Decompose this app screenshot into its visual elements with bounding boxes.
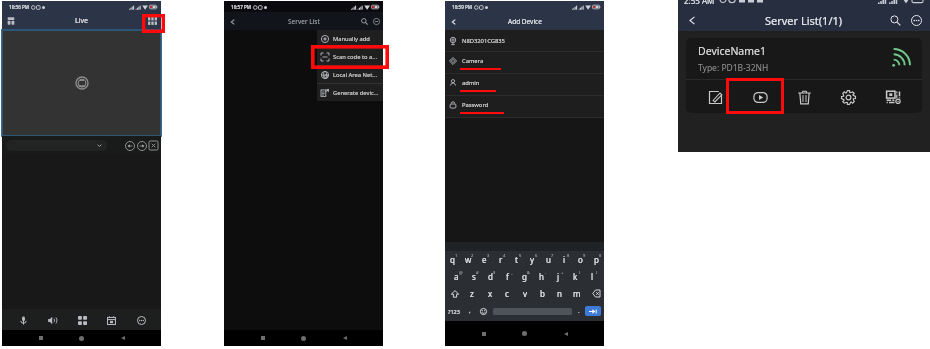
button[interactable]: Back: [226, 15, 239, 28]
staticText: j: [557, 271, 560, 282]
staticText: i: [563, 254, 566, 265]
staticText: (: [579, 270, 581, 275]
button[interactable]: m: [571, 288, 583, 299]
staticText: admin: [462, 79, 480, 87]
button[interactable]: f: [501, 268, 514, 285]
button[interactable]: p: [590, 251, 603, 268]
staticText: #: [476, 270, 479, 275]
button[interactable]: Scan code to a...: [317, 48, 383, 65]
button[interactable]: s: [467, 268, 480, 285]
staticText: c: [505, 288, 509, 299]
button[interactable]: Scan QR code: [145, 14, 159, 28]
button[interactable]: k: [569, 268, 582, 285]
button[interactable]: Search: [887, 12, 903, 28]
staticText: .: [578, 307, 580, 315]
staticText: ): [596, 270, 598, 275]
button[interactable]: Search: [358, 15, 370, 27]
button[interactable]: w: [462, 251, 475, 268]
staticText: d: [488, 271, 493, 282]
button[interactable]: x: [484, 288, 496, 299]
button[interactable]: admin: [445, 74, 604, 95]
button[interactable]: N8D3201CG835: [445, 30, 604, 51]
button[interactable]: q: [446, 251, 459, 268]
button[interactable]: [6, 140, 107, 151]
button[interactable]: h: [535, 268, 548, 285]
staticText: u: [546, 254, 551, 265]
button[interactable]: j: [552, 268, 565, 285]
staticText: f: [506, 271, 509, 282]
button[interactable]: Generate devic...: [317, 84, 383, 101]
staticText: DeviceName1: [698, 44, 766, 58]
staticText: g: [522, 271, 527, 282]
staticText: Type: PD1B-32NH: [698, 62, 769, 74]
staticText: h: [539, 271, 544, 282]
button[interactable]: e: [478, 251, 491, 268]
staticText: @: [459, 270, 463, 275]
staticText: Local Area Net...: [333, 71, 378, 79]
button[interactable]: Previous: [124, 140, 135, 151]
button[interactable]: Backspace: [588, 287, 601, 300]
staticText: m: [573, 288, 581, 299]
button[interactable]: Volume: [43, 311, 61, 329]
button[interactable]: Delete: [789, 82, 819, 112]
button[interactable]: y: [526, 251, 539, 268]
staticText: 4: [503, 253, 506, 258]
button[interactable]: Back: [447, 15, 460, 28]
button[interactable]: Shift: [448, 287, 461, 300]
button[interactable]: c: [501, 288, 513, 299]
button[interactable]: Microphone: [14, 311, 32, 329]
button[interactable]: Playback: [102, 311, 120, 329]
button[interactable]: Edit: [700, 82, 730, 112]
staticText: q: [450, 254, 455, 265]
button[interactable]: More options: [908, 12, 924, 28]
staticText: -: [545, 270, 547, 275]
button[interactable]: i: [558, 251, 571, 268]
staticText: x: [488, 288, 493, 299]
button[interactable]: QR code: [878, 82, 908, 112]
staticText: +: [561, 270, 564, 275]
staticText: Server List: [288, 17, 320, 26]
button[interactable]: u: [542, 251, 555, 268]
button[interactable]: Local Area Net...: [317, 66, 383, 83]
button[interactable]: r: [494, 251, 507, 268]
button[interactable]: o: [574, 251, 587, 268]
button[interactable]: t: [510, 251, 523, 268]
button[interactable]: Layout: [4, 14, 18, 28]
staticText: k: [573, 271, 578, 282]
staticText: Manually add: [333, 35, 370, 43]
staticText: 10:59 PM: [452, 4, 472, 10]
staticText: l: [591, 271, 594, 282]
staticText: v: [523, 288, 528, 299]
button[interactable]: d: [484, 268, 497, 285]
button[interactable]: Close: [148, 140, 159, 151]
button[interactable]: Next: [136, 140, 147, 151]
button[interactable]: v: [519, 288, 531, 299]
staticText: r: [499, 254, 503, 265]
button[interactable]: z: [466, 288, 478, 299]
button[interactable]: Password: [445, 96, 604, 117]
button[interactable]: Settings: [833, 82, 863, 112]
button[interactable]: ,: [469, 307, 471, 315]
button[interactable]: n: [553, 288, 565, 299]
button[interactable]: Grid view: [73, 311, 91, 329]
button[interactable]: Remove device: [370, 15, 382, 27]
button[interactable]: a: [450, 268, 463, 285]
button[interactable]: More: [132, 311, 150, 329]
staticText: n: [557, 288, 562, 299]
button[interactable]: Manually add: [317, 30, 383, 47]
button[interactable]: b: [536, 288, 548, 299]
button[interactable]: Play: [745, 82, 775, 112]
button[interactable]: l: [586, 268, 599, 285]
staticText: $: [493, 270, 496, 275]
staticText: o: [578, 254, 583, 265]
staticText: 9: [583, 253, 586, 258]
button[interactable]: Emoji: [479, 307, 488, 316]
button[interactable]: Camera: [445, 52, 604, 73]
button[interactable]: Back: [683, 11, 701, 29]
button[interactable]: .: [578, 307, 580, 315]
button[interactable]: g: [518, 268, 531, 285]
staticText: N8D3201CG835: [462, 37, 505, 45]
button[interactable]: Enter: [585, 306, 601, 316]
button[interactable]: ?123: [448, 308, 460, 315]
